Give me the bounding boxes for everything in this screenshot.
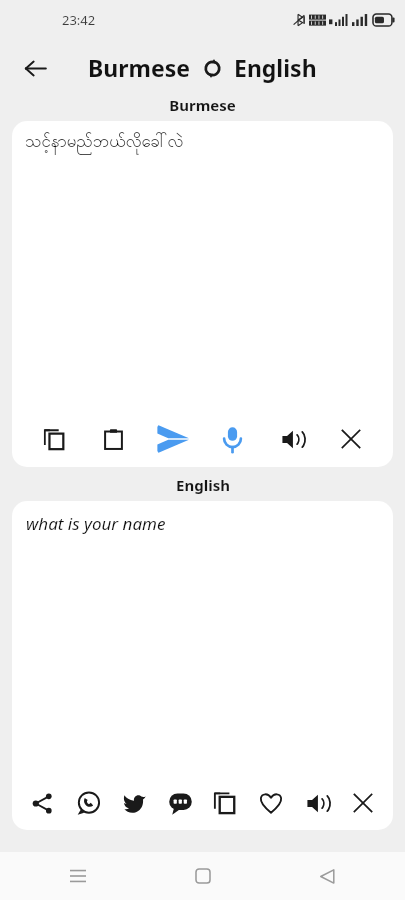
button[interactable]: Back: [307, 856, 347, 896]
staticText: Burmese: [88, 52, 190, 83]
button[interactable]: Favorite: [251, 783, 291, 823]
button[interactable]: Back: [14, 47, 56, 89]
button[interactable]: Paste: [93, 419, 133, 459]
button[interactable]: SMS: [160, 783, 200, 823]
button[interactable]: Twitter: [114, 783, 154, 823]
staticText: what is your name: [26, 512, 166, 535]
staticText: Burmese: [169, 95, 236, 115]
button[interactable]: WhatsApp: [68, 783, 108, 823]
button[interactable]: Clear: [343, 783, 383, 823]
staticText: English: [176, 475, 230, 495]
staticText: English: [234, 52, 317, 83]
button[interactable]: Translate: [153, 419, 193, 459]
button[interactable]: Recent apps: [58, 856, 98, 896]
button[interactable]: Speak: [272, 419, 312, 459]
button[interactable]: Voice input: [212, 419, 252, 459]
button[interactable]: Copy: [205, 783, 245, 823]
button[interactable]: Speak: [297, 783, 337, 823]
staticText: သင့်နာမည်ဘယ်လိုခေါ်လဲ: [25, 130, 184, 155]
staticText: 23:42: [62, 11, 96, 29]
button[interactable]: Clear: [331, 419, 371, 459]
button[interactable]: Home: [183, 856, 223, 896]
button[interactable]: Share: [22, 783, 62, 823]
button[interactable]: Copy: [34, 419, 74, 459]
button[interactable]: Swap languages: [197, 53, 227, 83]
